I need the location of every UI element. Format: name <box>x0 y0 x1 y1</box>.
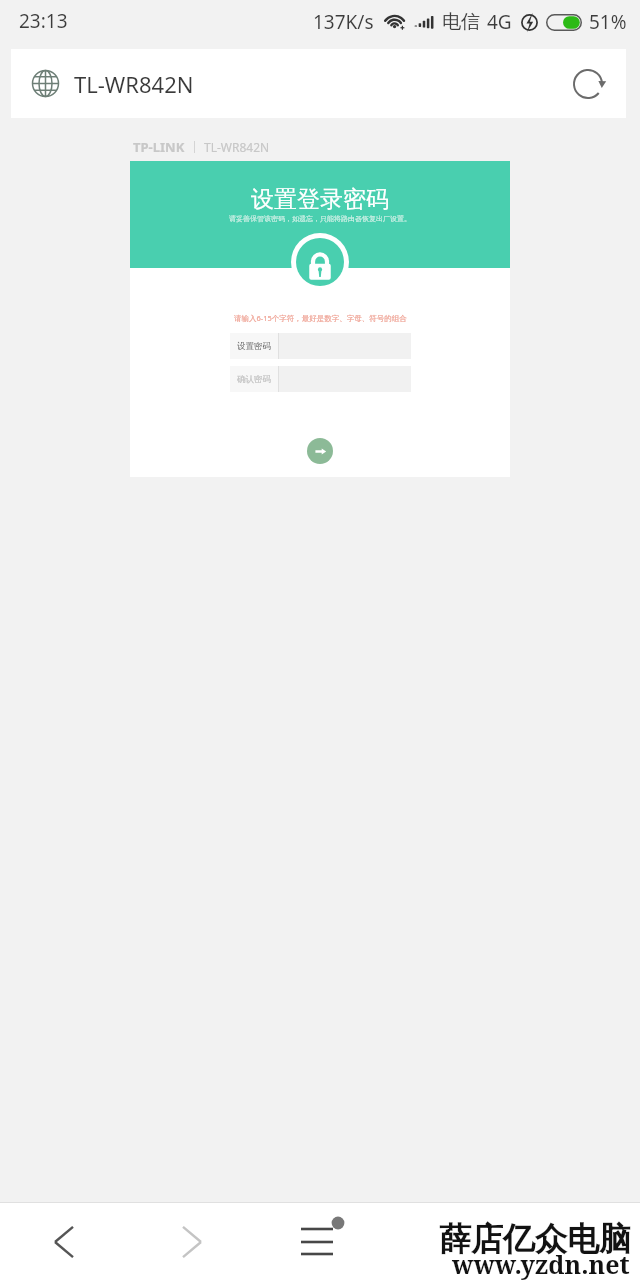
staticText: 电信 <box>442 10 480 34</box>
button[interactable]: 设置密码 <box>230 333 411 359</box>
staticText: TL-WR842N <box>204 139 270 155</box>
staticText: 设置密码 <box>237 341 271 352</box>
staticText: 请妥善保管该密码，如遗忘，只能将路由器恢复出厂设置。 <box>229 214 411 223</box>
staticText: 51% <box>589 9 627 35</box>
staticText: 薛店亿众电脑 <box>439 1219 631 1259</box>
button[interactable]: Refresh <box>564 60 612 108</box>
staticText: 请输入6-15个字符，最好是数字、字母、符号的组合 <box>234 313 407 323</box>
staticText: 设置登录密码 <box>251 185 389 214</box>
button[interactable]: TL-WR842N <box>11 49 626 118</box>
button[interactable]: Forward <box>128 1203 256 1280</box>
staticText: 23:13 <box>19 8 68 34</box>
staticText: 4G <box>487 9 512 35</box>
button[interactable]: Back <box>0 1203 128 1280</box>
staticText: TL-WR842N <box>74 69 194 99</box>
staticText: 确认密码 <box>237 374 271 385</box>
button[interactable]: 确认密码 <box>230 366 411 392</box>
button[interactable]: Menu <box>256 1203 384 1280</box>
staticText: TP-LINK <box>133 138 185 156</box>
staticText: www.yzdn.net <box>452 1247 630 1280</box>
staticText: 137K/s <box>313 9 374 35</box>
button[interactable]: Next <box>307 438 333 464</box>
